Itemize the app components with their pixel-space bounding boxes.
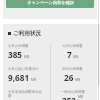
staticText: 今月の使用量 — [8, 44, 29, 48]
button[interactable]: キャンペーン内容を確認 — [6, 0, 94, 8]
button[interactable]: 今月の使用量 — [8, 44, 50, 60]
staticText: キャンペーン内容を確認 — [27, 0, 74, 5]
staticText: 今月末有効期限切れ容量 — [8, 90, 42, 98]
button[interactable]: 一昨日の使用量 — [51, 90, 94, 100]
staticText: 昨日の使用量 — [62, 67, 83, 71]
staticText: 9,681 — [8, 72, 30, 83]
staticText: 352 — [62, 95, 77, 100]
button[interactable]: Section marker — [8, 30, 42, 37]
staticText: 26 — [64, 72, 74, 83]
button[interactable]: 昨日の使用量 — [51, 67, 94, 83]
staticText: MB — [75, 77, 81, 82]
button[interactable]: 今月の残り容量合計 — [8, 67, 50, 83]
staticText: 今月の残り容量合計 — [8, 67, 39, 71]
staticText: ご利用状況 — [13, 30, 42, 37]
staticText: 385 — [8, 49, 23, 60]
button[interactable]: 今日の使用量 — [51, 44, 94, 60]
staticText: MB — [31, 77, 37, 82]
staticText: MB — [78, 94, 84, 99]
staticText: 今日の使用量 — [62, 44, 83, 48]
staticText: 7 — [67, 49, 72, 60]
staticText: MB — [24, 54, 30, 59]
staticText: MB — [73, 54, 79, 59]
staticText: 一昨日の使用量 — [61, 90, 85, 94]
